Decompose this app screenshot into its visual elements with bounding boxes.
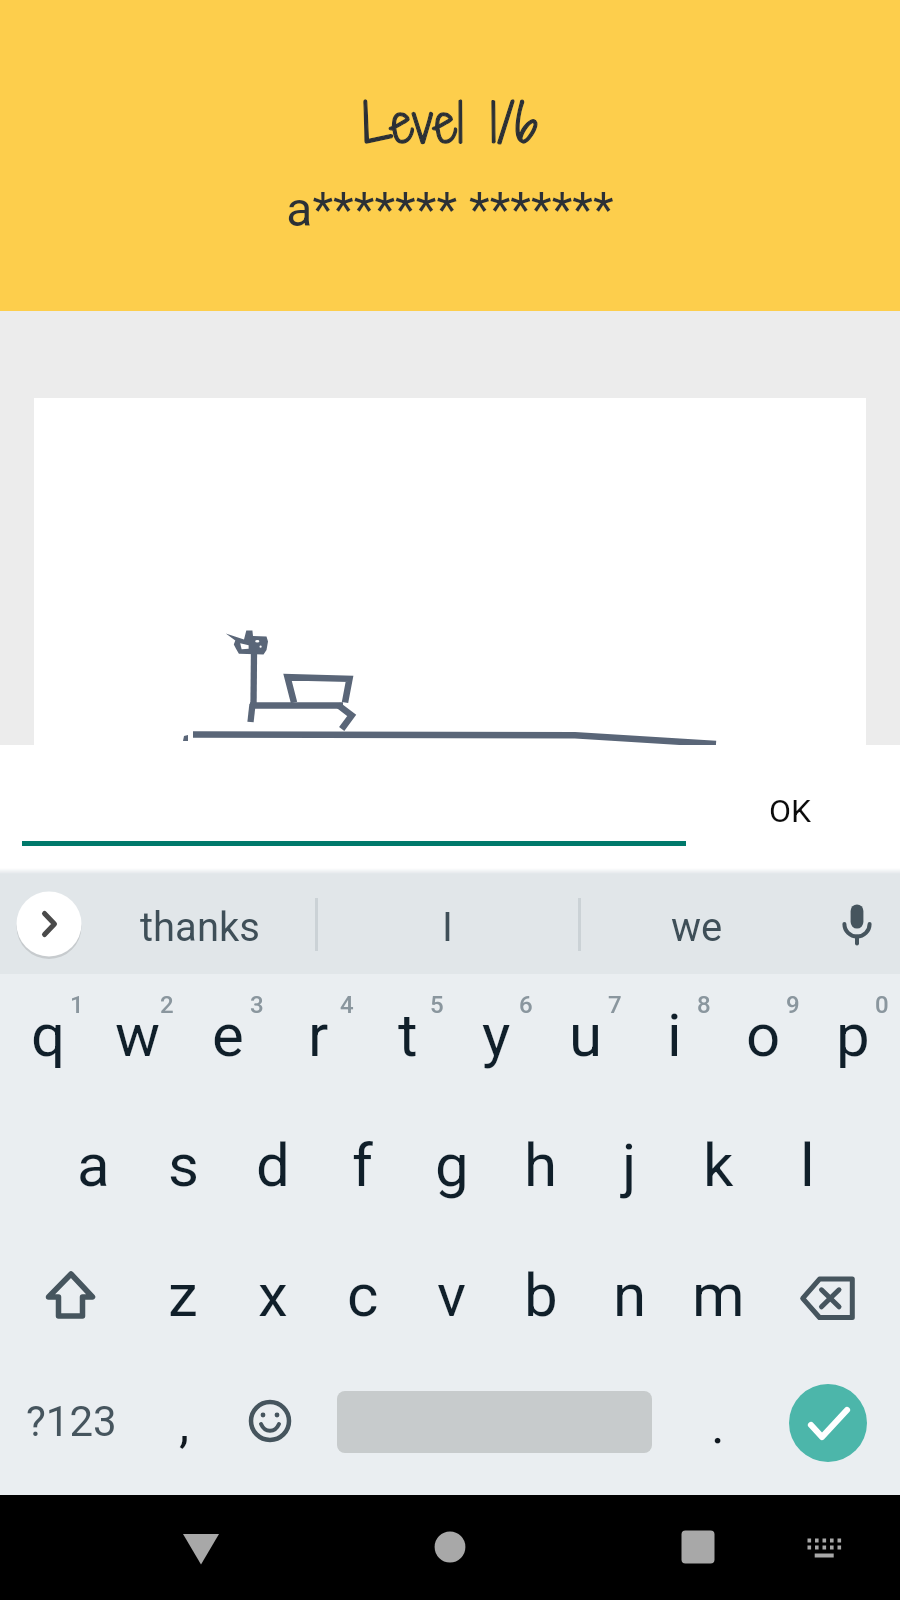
staticText: 5: [430, 991, 444, 1019]
staticText: 8: [697, 991, 711, 1019]
staticText: a: [77, 1130, 110, 1200]
button[interactable]: a: [48, 1100, 138, 1230]
staticText: we: [671, 904, 723, 951]
button[interactable]: e: [183, 974, 273, 1100]
button[interactable]: Change keyboard: [788, 1495, 860, 1600]
staticText: j: [622, 1130, 637, 1200]
button[interactable]: w: [93, 974, 183, 1100]
button[interactable]: Answer: [22, 763, 686, 846]
button[interactable]: t: [363, 974, 452, 1100]
staticText: v: [437, 1260, 467, 1330]
button[interactable]: thanks: [90, 874, 310, 974]
staticText: Level 1/6: [362, 85, 538, 160]
button[interactable]: z: [138, 1230, 228, 1360]
staticText: ?123: [26, 1397, 117, 1446]
staticText: 9: [786, 991, 800, 1019]
staticText: 7: [608, 991, 622, 1019]
button[interactable]: v: [407, 1230, 496, 1360]
button[interactable]: Shift: [3, 1230, 138, 1360]
staticText: 6: [519, 991, 533, 1019]
staticText: .: [711, 1395, 725, 1456]
staticText: f: [352, 1130, 373, 1200]
button[interactable]: l: [763, 1100, 852, 1230]
button[interactable]: Enter: [789, 1384, 867, 1462]
staticText: Level 1/6: [362, 85, 538, 160]
button[interactable]: c: [318, 1230, 407, 1360]
button[interactable]: x: [228, 1230, 318, 1360]
staticText: 3: [250, 991, 264, 1019]
button[interactable]: g: [407, 1100, 496, 1230]
button[interactable]: Emoji: [235, 1386, 305, 1456]
button[interactable]: h: [496, 1100, 585, 1230]
button[interactable]: u: [541, 974, 630, 1100]
button[interactable]: r: [273, 974, 363, 1100]
button[interactable]: Recents: [648, 1495, 748, 1600]
staticText: q: [31, 1000, 66, 1070]
button[interactable]: Voice input: [820, 885, 894, 959]
staticText: t: [398, 1000, 418, 1070]
staticText: I: [442, 904, 453, 951]
staticText: r: [308, 1000, 329, 1070]
staticText: x: [258, 1260, 288, 1330]
staticText: m: [692, 1260, 745, 1330]
staticText: z: [168, 1260, 198, 1330]
button[interactable]: ?123: [16, 1376, 126, 1466]
button[interactable]: Home: [400, 1495, 500, 1600]
button[interactable]: n: [585, 1230, 674, 1360]
button[interactable]: we: [587, 874, 807, 974]
staticText: l: [800, 1130, 815, 1200]
button[interactable]: j: [585, 1100, 674, 1230]
staticText: i: [667, 1000, 682, 1070]
staticText: p: [836, 1000, 870, 1070]
button[interactable]: OK: [720, 771, 860, 851]
staticText: u: [569, 1000, 603, 1070]
button[interactable]: q: [3, 974, 93, 1100]
button[interactable]: Back: [151, 1495, 251, 1600]
button[interactable]: I: [337, 874, 557, 974]
staticText: s: [168, 1130, 199, 1200]
staticText: n: [613, 1260, 647, 1330]
staticText: 2: [160, 991, 174, 1019]
button[interactable]: .: [688, 1376, 748, 1466]
button[interactable]: i: [630, 974, 719, 1100]
button[interactable]: k: [674, 1100, 763, 1230]
button[interactable]: More suggestions: [14, 889, 84, 959]
staticText: c: [347, 1260, 379, 1330]
button[interactable]: ,: [149, 1376, 219, 1466]
button[interactable]: s: [138, 1100, 228, 1230]
button[interactable]: Backspace: [763, 1230, 897, 1360]
staticText: 1: [70, 991, 84, 1019]
staticText: w: [115, 1000, 161, 1070]
staticText: e: [212, 1000, 244, 1070]
staticText: a******* *******: [286, 181, 614, 237]
button[interactable]: y: [452, 974, 541, 1100]
staticText: 4: [340, 991, 354, 1019]
button[interactable]: m: [674, 1230, 763, 1360]
staticText: y: [482, 1000, 511, 1070]
button[interactable]: o: [719, 974, 808, 1100]
staticText: h: [524, 1130, 558, 1200]
staticText: thanks: [140, 904, 260, 951]
staticText: g: [435, 1130, 469, 1200]
staticText: ,: [179, 1394, 190, 1455]
button[interactable]: b: [496, 1230, 585, 1360]
button[interactable]: f: [318, 1100, 407, 1230]
staticText: d: [256, 1130, 290, 1200]
staticText: b: [524, 1260, 558, 1330]
staticText: OK: [769, 792, 812, 830]
button[interactable]: d: [228, 1100, 318, 1230]
staticText: k: [703, 1130, 734, 1200]
staticText: 0: [875, 991, 889, 1019]
staticText: o: [746, 1000, 781, 1070]
button[interactable]: p: [808, 974, 897, 1100]
